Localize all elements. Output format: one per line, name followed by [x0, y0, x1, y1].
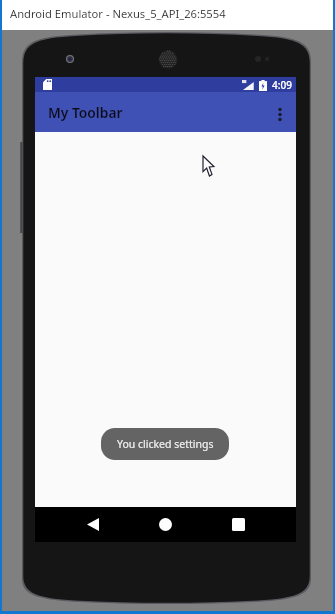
- staticText: Android Emulator - Nexus_5_API_26:5554: [10, 6, 226, 21]
- button[interactable]: Recent apps: [212, 507, 264, 542]
- staticText: 4:09: [272, 78, 292, 92]
- staticText: You clicked settings: [117, 437, 214, 451]
- button[interactable]: Home: [139, 507, 191, 542]
- button[interactable]: Back: [67, 507, 119, 542]
- button[interactable]: More options: [262, 92, 296, 132]
- staticText: My Toolbar: [48, 103, 262, 122]
